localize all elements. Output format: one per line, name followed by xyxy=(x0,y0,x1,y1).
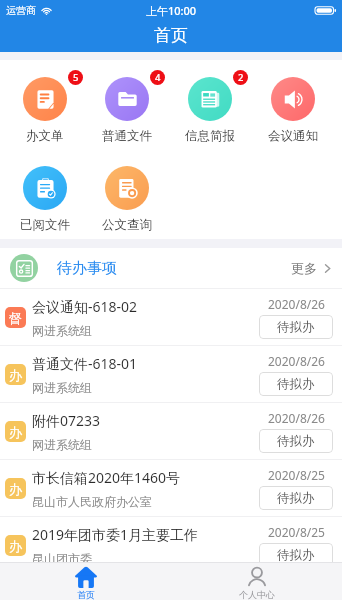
button[interactable]: 待拟办 xyxy=(259,372,333,396)
staticText: 2020/8/25 xyxy=(268,524,325,540)
staticText: 市长信箱2020年1460号 xyxy=(32,468,181,487)
button[interactable]: 5 xyxy=(4,77,86,144)
staticText: 2020/8/26 xyxy=(268,296,325,312)
button[interactable]: 已阅文件 xyxy=(4,166,86,233)
staticText: 办文单 xyxy=(26,128,64,144)
staticText: 待拟办 xyxy=(277,376,315,392)
staticText: 已阅文件 xyxy=(20,217,70,233)
button[interactable]: 督 xyxy=(0,289,342,345)
staticText: 2020/8/26 xyxy=(268,353,325,369)
button[interactable]: 待拟办 xyxy=(259,486,333,510)
button[interactable]: 公文查询 xyxy=(86,166,168,233)
staticText: 网进系统组 xyxy=(32,323,92,338)
button[interactable]: 2 xyxy=(168,77,251,144)
staticText: 待拟办 xyxy=(277,547,315,563)
staticText: 附件07233 xyxy=(32,411,101,430)
staticText: 待拟办 xyxy=(277,433,315,449)
staticText: 昆山市人民政府办公室 xyxy=(32,494,152,509)
staticText: 普通文件-618-01 xyxy=(32,354,138,373)
staticText: 网进系统组 xyxy=(32,437,92,452)
staticText: 2 xyxy=(238,71,244,84)
button[interactable]: 待拟办 xyxy=(259,315,333,339)
button[interactable]: 首页 xyxy=(0,564,171,600)
staticText: 办 xyxy=(9,481,22,497)
staticText: 5 xyxy=(73,71,79,84)
staticText: 运营商 xyxy=(6,4,36,17)
staticText: 更多 xyxy=(291,260,317,276)
button[interactable]: 4 xyxy=(86,77,168,144)
staticText: 个人中心 xyxy=(239,589,275,600)
button[interactable]: 个人中心 xyxy=(171,564,342,600)
staticText: 会议通知-618-02 xyxy=(32,297,138,316)
staticText: 办 xyxy=(9,424,22,440)
button[interactable]: 会议通知 xyxy=(251,77,334,144)
staticText: 公文查询 xyxy=(102,217,152,233)
staticText: 上午10:00 xyxy=(146,3,197,18)
staticText: 待拟办 xyxy=(277,319,315,335)
staticText: 2020/8/26 xyxy=(268,410,325,426)
staticText: 4 xyxy=(155,71,161,84)
staticText: 2020/8/25 xyxy=(268,467,325,483)
staticText: 办 xyxy=(9,367,22,383)
staticText: 普通文件 xyxy=(102,128,152,144)
button[interactable]: 待拟办 xyxy=(259,543,333,567)
staticText: 待办事项 xyxy=(57,259,117,278)
button[interactable]: 办 xyxy=(0,346,342,402)
staticText: 督 xyxy=(9,310,22,326)
staticText: 2019年团市委1月主要工作 xyxy=(32,525,199,544)
button[interactable]: 办 xyxy=(0,517,342,573)
staticText: 昆山团市委 xyxy=(32,551,92,566)
staticText: 信息简报 xyxy=(185,128,235,144)
button[interactable]: 办 xyxy=(0,460,342,516)
staticText: 首页 xyxy=(154,25,188,46)
button[interactable]: 待办事项 xyxy=(0,248,342,288)
staticText: 会议通知 xyxy=(268,128,318,144)
button[interactable]: 待拟办 xyxy=(259,429,333,453)
staticText: 待拟办 xyxy=(277,490,315,506)
staticText: 网进系统组 xyxy=(32,380,92,395)
staticText: 办 xyxy=(9,538,22,554)
button[interactable]: 办 xyxy=(0,403,342,459)
staticText: 首页 xyxy=(77,589,95,600)
